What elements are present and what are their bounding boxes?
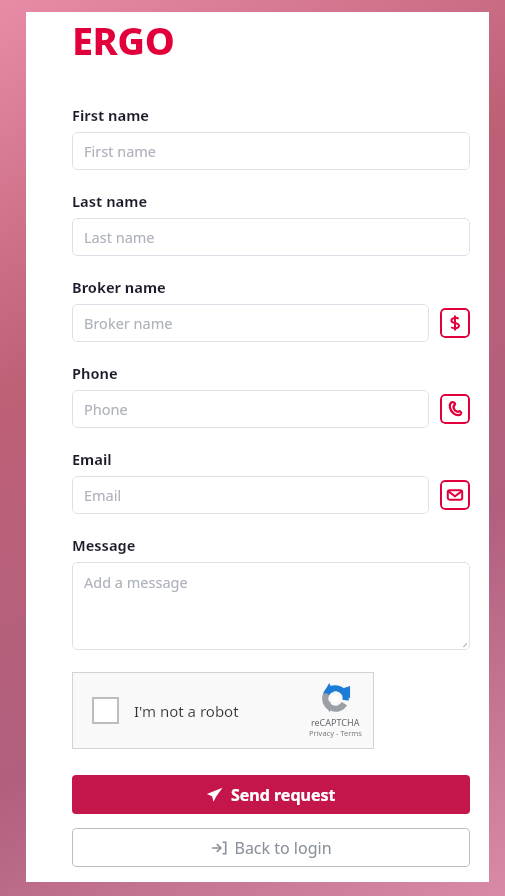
button[interactable]: Broker name xyxy=(72,304,429,342)
staticText: Send request xyxy=(231,784,336,806)
button[interactable]: Broker lookup xyxy=(440,308,470,338)
staticText: First name xyxy=(84,141,157,161)
staticText: Broker name xyxy=(72,277,166,297)
staticText: Back to login xyxy=(234,837,332,859)
button[interactable]: First name xyxy=(72,132,470,170)
staticText: I'm not a robot xyxy=(134,701,239,721)
staticText: Privacy - Terms xyxy=(309,728,362,738)
button[interactable]: Send request xyxy=(72,775,470,814)
button[interactable]: I'm not a robot xyxy=(72,672,374,749)
button[interactable]: Phone xyxy=(72,390,429,428)
button[interactable]: Email xyxy=(440,480,470,510)
staticText: reCAPTCHA xyxy=(311,716,360,728)
staticText: First name xyxy=(72,105,150,125)
staticText: Email xyxy=(84,485,122,505)
staticText: Phone xyxy=(84,399,128,419)
button[interactable]: Add a message xyxy=(72,562,470,650)
button[interactable]: Back to login xyxy=(72,828,470,867)
button[interactable]: Email xyxy=(72,476,429,514)
button[interactable]: Last name xyxy=(72,218,470,256)
staticText: Last name xyxy=(72,191,148,211)
staticText: Broker name xyxy=(84,313,173,333)
staticText: Last name xyxy=(84,227,155,247)
staticText: ERGO xyxy=(72,14,175,66)
staticText: Email xyxy=(72,449,112,469)
button[interactable]: Call xyxy=(440,394,470,424)
staticText: Phone xyxy=(72,363,118,383)
staticText: Add a message xyxy=(84,572,188,592)
staticText: Message xyxy=(72,535,136,555)
